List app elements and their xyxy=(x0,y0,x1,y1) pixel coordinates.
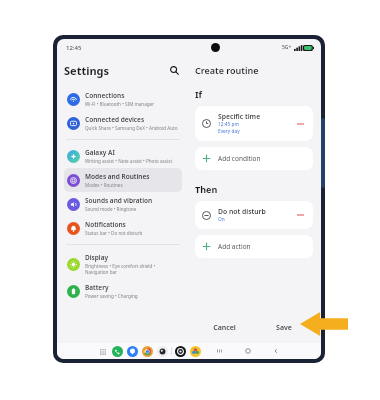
button[interactable]: Add action xyxy=(195,235,313,258)
button[interactable]: recents xyxy=(215,346,225,356)
staticText: 5G+ xyxy=(282,44,292,51)
button[interactable]: Settings xyxy=(175,346,186,357)
button[interactable]: Sounds and vibration xyxy=(64,192,182,216)
staticText: Do not disturb xyxy=(218,207,266,216)
staticText: 12:45 pm xyxy=(218,121,239,128)
button[interactable]: Specific time xyxy=(195,106,313,141)
button[interactable]: Cancel xyxy=(195,319,254,337)
button[interactable]: Battery xyxy=(64,279,182,303)
staticText: Status bar • Do not disturb xyxy=(85,230,143,236)
staticText: Connections xyxy=(85,91,125,100)
staticText: Modes and Routines xyxy=(85,172,150,181)
button[interactable]: Remove Specific time xyxy=(294,118,306,130)
button[interactable]: Phone xyxy=(112,346,123,357)
button[interactable]: Remove Do not disturb xyxy=(294,209,306,221)
button[interactable]: Connected devices xyxy=(64,111,182,135)
button[interactable]: Save xyxy=(254,319,313,337)
staticText: Add condition xyxy=(218,154,261,163)
staticText: Add action xyxy=(218,242,251,251)
button[interactable]: Add condition xyxy=(195,147,313,170)
staticText: Sound mode • Ringtone xyxy=(85,206,137,212)
staticText: Brightness • Eye comfort shield • Naviga… xyxy=(85,263,179,275)
button[interactable]: Modes and Routines xyxy=(64,168,182,192)
staticText: Notifications xyxy=(85,220,126,229)
staticText: Writing assist • Note assist • Photo ass… xyxy=(85,158,173,164)
staticText: Quick Share • Samsung DeX • Android Auto xyxy=(85,125,178,131)
staticText: 12:45 xyxy=(66,44,82,52)
staticText: Battery xyxy=(85,283,109,292)
staticText: Power saving • Charging xyxy=(85,293,138,299)
button[interactable]: Notifications xyxy=(64,216,182,240)
button[interactable]: Photos xyxy=(190,346,201,357)
button[interactable]: All apps xyxy=(97,346,108,357)
staticText: On xyxy=(218,216,225,223)
staticText: Settings xyxy=(64,63,166,78)
button[interactable]: Messages xyxy=(127,346,138,357)
button[interactable]: Galaxy AI xyxy=(64,144,182,168)
staticText: If xyxy=(195,88,202,100)
button[interactable]: Chrome xyxy=(142,346,153,357)
staticText: Wi-Fi • Bluetooth • SIM manager xyxy=(85,101,155,107)
staticText: Every day xyxy=(218,128,240,135)
button[interactable]: home xyxy=(243,346,253,356)
staticText: Then xyxy=(195,183,218,195)
button[interactable]: Do not disturb xyxy=(195,201,313,229)
staticText: Specific time xyxy=(218,112,261,121)
button[interactable]: Camera xyxy=(157,346,168,357)
staticText: Connected devices xyxy=(85,115,145,124)
button[interactable]: Search xyxy=(166,62,182,78)
button[interactable]: Connections xyxy=(64,87,182,111)
staticText: Modes • Routines xyxy=(85,182,123,188)
staticText: Cancel xyxy=(213,323,236,333)
staticText: Galaxy AI xyxy=(85,148,115,157)
staticText: Create routine xyxy=(195,64,259,76)
staticText: Display xyxy=(85,253,109,262)
button[interactable]: back xyxy=(271,346,281,356)
button[interactable]: Display xyxy=(64,249,182,279)
staticText: Save xyxy=(276,323,292,333)
staticText: Sounds and vibration xyxy=(85,196,153,205)
